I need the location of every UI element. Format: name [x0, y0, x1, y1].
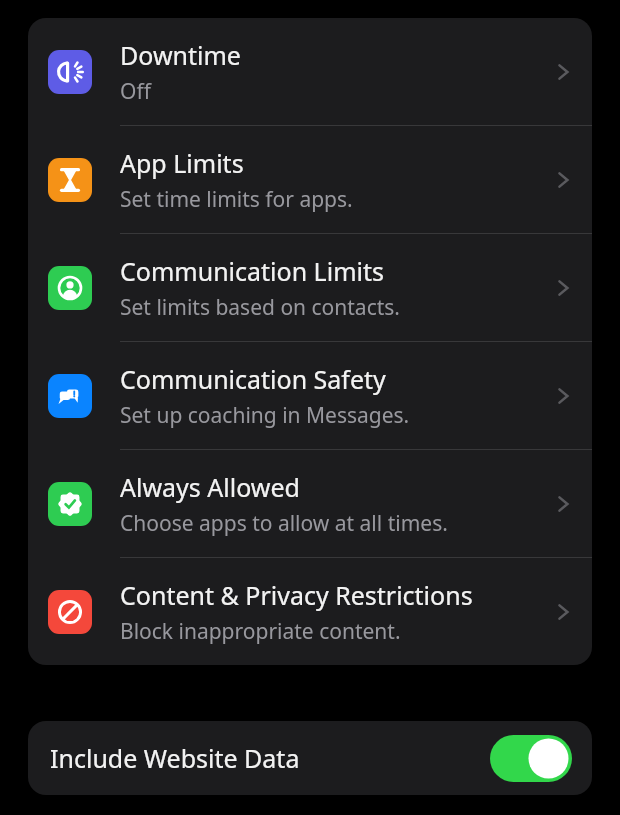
- staticText: Downtime: [120, 38, 241, 72]
- staticText: Communication Limits: [120, 254, 384, 288]
- button[interactable]: Include Website Data: [28, 721, 592, 795]
- staticText: Always Allowed: [120, 470, 300, 504]
- button[interactable]: Always Allowed: [28, 450, 592, 557]
- staticText: Include Website Data: [50, 741, 300, 775]
- button[interactable]: Include Website Data toggle: [490, 735, 572, 782]
- button[interactable]: Downtime: [28, 18, 592, 125]
- staticText: Off: [120, 77, 151, 106]
- staticText: Block inappropriate content.: [120, 617, 401, 646]
- staticText: Set limits based on contacts.: [120, 293, 400, 322]
- staticText: Set time limits for apps.: [120, 185, 353, 214]
- staticText: App Limits: [120, 146, 244, 180]
- staticText: Set up coaching in Messages.: [120, 401, 410, 430]
- button[interactable]: Communication Limits: [28, 234, 592, 341]
- button[interactable]: Content & Privacy Restrictions: [28, 558, 592, 665]
- button[interactable]: Communication Safety: [28, 342, 592, 449]
- button[interactable]: App Limits: [28, 126, 592, 233]
- staticText: Choose apps to allow at all times.: [120, 509, 448, 538]
- staticText: Content & Privacy Restrictions: [120, 578, 473, 612]
- staticText: Communication Safety: [120, 362, 386, 396]
